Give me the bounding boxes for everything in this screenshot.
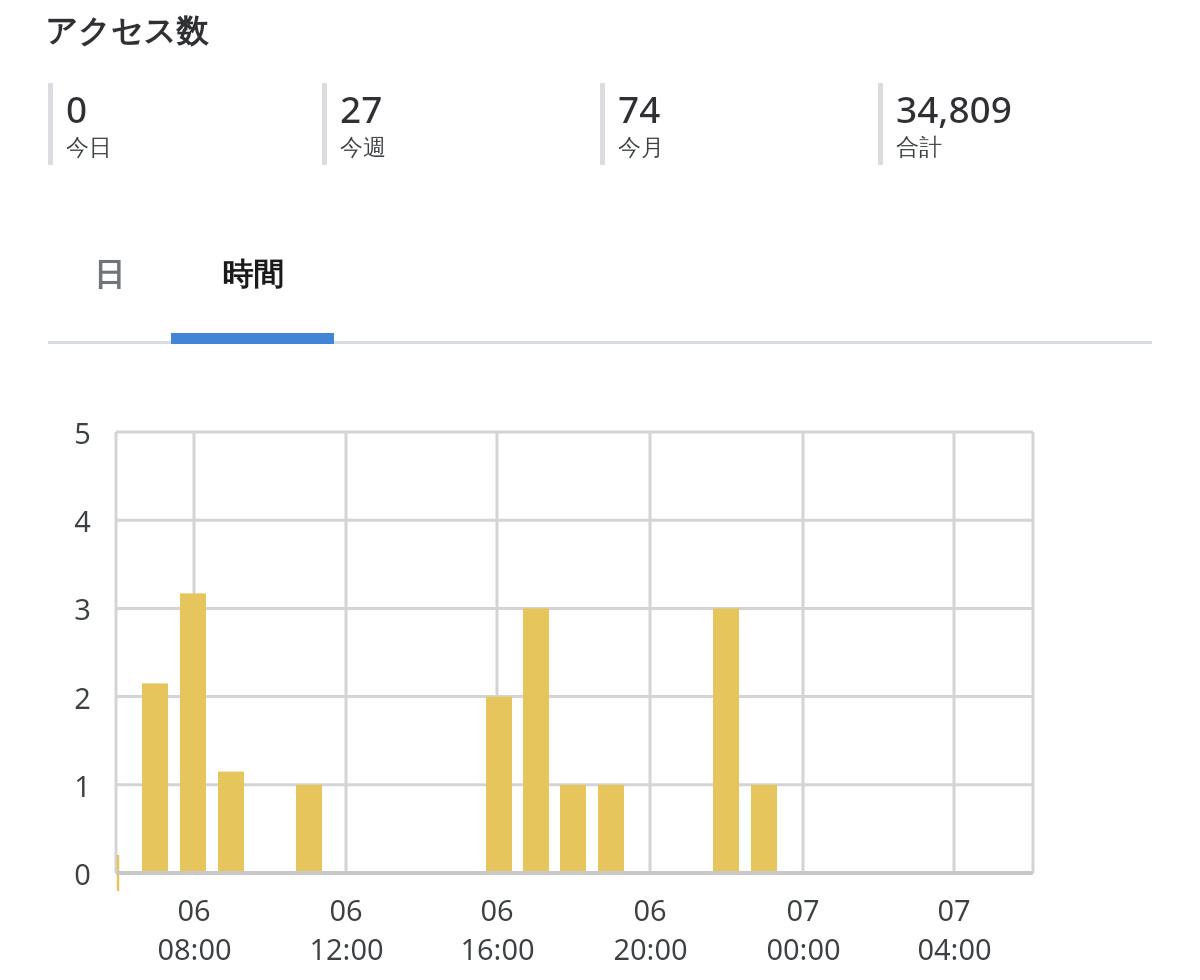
staticText: 06 xyxy=(633,890,667,929)
staticText: 07 xyxy=(786,890,820,929)
staticText: 06 xyxy=(177,890,211,929)
button[interactable]: 日 xyxy=(48,255,171,344)
staticText: 合計 xyxy=(896,133,942,162)
staticText: 2 xyxy=(74,678,91,717)
staticText: 34,809 xyxy=(896,83,1012,133)
staticText: 12:00 xyxy=(309,929,384,968)
staticText: 08:00 xyxy=(157,929,232,968)
staticText: 16:00 xyxy=(460,929,535,968)
staticText: 0 xyxy=(74,854,91,893)
staticText: 4 xyxy=(74,501,91,540)
staticText: 今日 xyxy=(66,133,112,162)
staticText: 5 xyxy=(74,413,91,452)
staticText: 1 xyxy=(74,766,91,805)
staticText: 20:00 xyxy=(613,929,688,968)
staticText: 74 xyxy=(618,83,661,133)
staticText: 27 xyxy=(340,83,383,133)
button[interactable]: 74 xyxy=(600,83,664,165)
button[interactable]: 時間 xyxy=(171,255,334,344)
staticText: 0 xyxy=(66,83,88,133)
staticText: 06 xyxy=(480,890,514,929)
staticText: 04:00 xyxy=(917,929,992,968)
staticText: 00:00 xyxy=(766,929,841,968)
staticText: 今月 xyxy=(618,133,664,162)
button[interactable]: 34,809 xyxy=(878,83,1012,165)
staticText: アクセス数 xyxy=(45,11,208,51)
staticText: 07 xyxy=(937,890,971,929)
button[interactable]: 27 xyxy=(322,83,386,165)
staticText: 今週 xyxy=(340,133,386,162)
staticText: 日 xyxy=(94,255,125,294)
button[interactable]: 0 xyxy=(48,83,112,165)
staticText: 時間 xyxy=(222,255,284,294)
staticText: 06 xyxy=(329,890,363,929)
staticText: 3 xyxy=(74,589,91,628)
